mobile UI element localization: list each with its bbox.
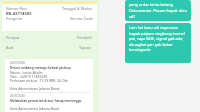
staticText: Pengirim [6,16,23,21]
staticText: BK-43714505 [6,11,32,16]
staticText: yang order kirim belang [129,2,173,7]
staticText: Driver sedang menuju lokasi pickup. [10,65,72,70]
staticText: Perkiraan pickup : 11:29 WIB, 26 Okt [10,78,68,82]
button[interactable]: 26/07/2020 [10,93,90,111]
staticText: Kota Administrasi Jakarta Barat [10,86,60,91]
staticText: Tujuan [79,45,92,50]
staticText: Kota Administrasi Jakarta Barat [10,106,60,111]
staticText: Service Code [70,16,93,21]
staticText: Telp : +62819 11483239 [10,74,48,78]
button[interactable]: yang order kirim belang [125,0,191,21]
staticText: 26/07/2020 [10,94,25,98]
staticText: akungkat yan gak kabar [129,42,173,47]
staticText: sd? [129,14,135,19]
button[interactable]: 26/07/2020 [10,60,90,91]
staticText: Nama : Jumat Abidin [10,70,43,74]
staticText: 26/07/2020 [10,61,25,65]
staticText: pat, saya 8:05, signal gak ada, [129,36,184,41]
staticText: Nomor Resi [6,6,27,11]
staticText: Tanggal & Waktu [62,6,93,11]
button[interactable]: Lain hal kasu adi saya ama [125,23,191,63]
button[interactable]: Nomor Resi [2,4,97,31]
staticText: Pembeli [77,35,92,40]
staticText: Penjual [6,35,20,40]
staticText: kemingunie [129,47,151,52]
staticText: Lain hal kasu adi saya ama [129,25,178,30]
staticText: Dokumentsi. Proses bapak dimana [129,8,187,13]
staticText: Melakukan pencarian driver, harap menung… [10,99,83,103]
staticText: Asal [6,45,14,50]
staticText: bapak pinjam singkong termel [129,31,185,36]
